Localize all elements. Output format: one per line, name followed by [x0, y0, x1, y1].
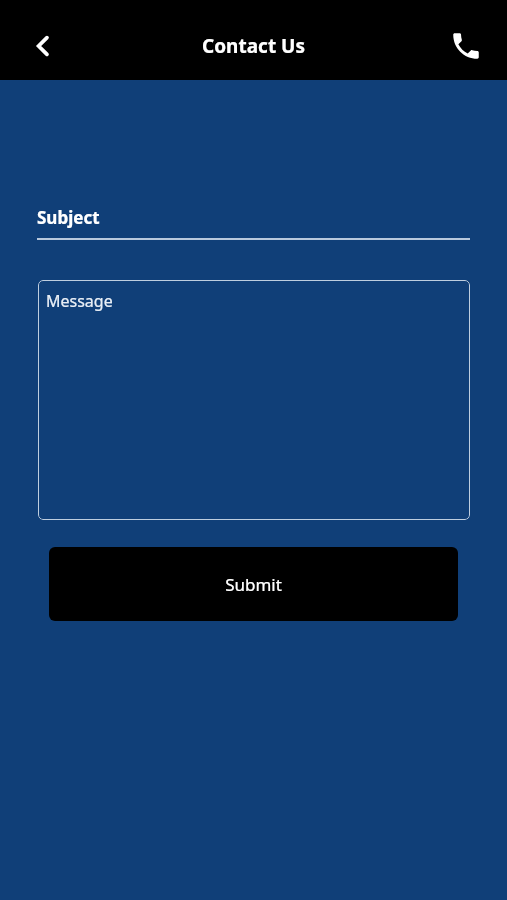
- staticText: Contact Us: [202, 33, 305, 59]
- staticText: Submit: [225, 573, 282, 596]
- button[interactable]: Submit: [49, 547, 458, 621]
- button[interactable]: Call: [443, 23, 489, 69]
- button[interactable]: Back: [20, 23, 66, 69]
- button[interactable]: Message: [38, 280, 470, 520]
- staticText: Subject: [37, 206, 100, 229]
- staticText: Message: [46, 290, 113, 312]
